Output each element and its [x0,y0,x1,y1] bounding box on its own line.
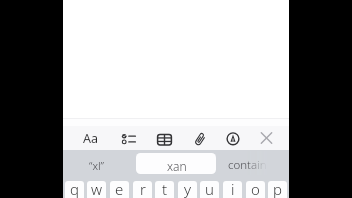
staticText: o [251,181,260,198]
staticText: p [273,181,282,198]
button[interactable] [152,126,177,150]
button[interactable]: xan [136,153,216,174]
button[interactable] [254,126,279,150]
staticText: y [184,181,192,198]
button[interactable]: u [200,181,219,198]
staticText: w [91,181,103,198]
button[interactable]: o [246,181,265,198]
staticText: r [140,181,146,198]
button[interactable]: q [65,181,84,198]
button[interactable]: i [223,181,242,198]
button[interactable]: “xl” [63,151,130,175]
staticText: Aa [83,130,99,147]
button[interactable]: p [268,181,287,198]
button[interactable]: Aa [79,126,103,150]
button[interactable] [221,126,245,150]
button[interactable]: y [178,181,197,198]
button[interactable]: w [87,181,106,198]
staticText: “xl” [89,158,104,173]
staticText: xan [167,158,187,174]
button[interactable]: t [155,181,174,198]
button[interactable] [116,126,140,150]
staticText: e [115,181,124,198]
button[interactable]: contain [216,151,289,175]
button[interactable]: e [110,181,129,198]
staticText: u [205,181,214,198]
staticText: i [231,181,235,198]
staticText: q [70,181,79,198]
button[interactable] [188,126,212,150]
staticText: contain [228,157,267,173]
staticText: t [162,181,168,198]
button[interactable]: r [133,181,152,198]
